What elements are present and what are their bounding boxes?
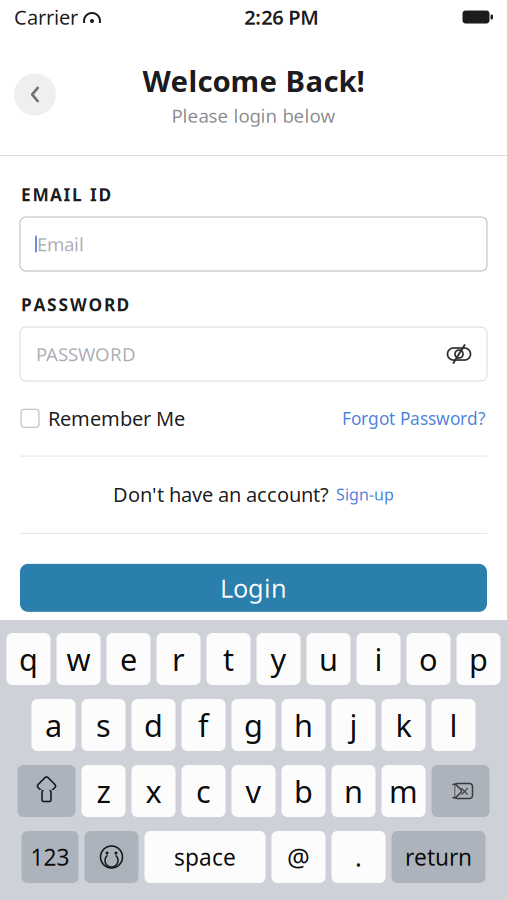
staticText: Carrier <box>14 4 78 30</box>
staticText: o <box>419 639 438 679</box>
staticText: Don't have an account? <box>113 481 329 507</box>
staticText: c <box>196 771 211 811</box>
button[interactable]: o <box>406 633 450 685</box>
staticText: b <box>294 771 313 811</box>
button[interactable]: space <box>144 831 265 883</box>
staticText: Email <box>37 232 84 256</box>
staticText: A <box>33 293 45 316</box>
button[interactable]: z <box>81 765 125 817</box>
button[interactable]: n <box>331 765 375 817</box>
staticText: Login <box>220 571 287 605</box>
staticText: k <box>395 705 411 745</box>
staticText: Forgot Password? <box>342 407 486 430</box>
button[interactable]: a <box>31 699 75 751</box>
staticText: s <box>96 705 111 745</box>
button[interactable]: s <box>81 699 125 751</box>
staticText: p <box>469 639 488 679</box>
staticText: h <box>294 705 313 745</box>
button[interactable]: t <box>206 633 250 685</box>
button[interactable]: v <box>231 765 275 817</box>
staticText: S <box>47 293 57 316</box>
staticText: O <box>88 293 102 316</box>
staticText: n <box>344 771 363 811</box>
button[interactable]: Forgot Password? <box>342 401 486 436</box>
button[interactable]: f <box>181 699 225 751</box>
staticText: . <box>355 840 362 874</box>
staticText: w <box>66 639 90 679</box>
button[interactable]: k <box>381 699 425 751</box>
staticText: y <box>270 639 286 679</box>
staticText: PASSWORD <box>36 342 136 366</box>
button[interactable]: j <box>331 699 375 751</box>
staticText: Sign-up <box>336 484 394 505</box>
staticText: D <box>116 293 129 316</box>
staticText: i <box>374 639 382 679</box>
staticText: A <box>50 183 62 206</box>
staticText: I <box>63 183 70 206</box>
button[interactable]: @ <box>271 831 325 883</box>
button[interactable]: p <box>456 633 500 685</box>
staticText: Welcome Back! <box>142 61 364 100</box>
staticText: 123 <box>30 842 69 872</box>
staticText: R <box>104 293 115 316</box>
staticText: t <box>223 639 234 679</box>
staticText: r <box>172 639 185 679</box>
staticText: j <box>349 705 357 745</box>
staticText: space <box>174 842 236 872</box>
staticText: D <box>98 183 111 206</box>
staticText: f <box>198 705 209 745</box>
button[interactable]: Shift <box>17 765 75 817</box>
button[interactable]: w <box>56 633 100 685</box>
button[interactable]: c <box>181 765 225 817</box>
button[interactable]: x <box>131 765 175 817</box>
button[interactable]: Delete <box>431 765 489 817</box>
button[interactable]: y <box>256 633 300 685</box>
button[interactable]: return <box>391 831 485 883</box>
staticText: P <box>21 293 32 316</box>
staticText: v <box>245 771 261 811</box>
staticText: Remember Me <box>48 405 185 432</box>
button[interactable]: q <box>6 633 50 685</box>
button[interactable]: 123 <box>21 831 78 883</box>
staticText: W <box>70 293 87 316</box>
button[interactable]: Login <box>20 564 487 612</box>
staticText: d <box>144 705 163 745</box>
button[interactable]: d <box>131 699 175 751</box>
button[interactable]: i <box>356 633 400 685</box>
button[interactable]: g <box>231 699 275 751</box>
staticText: E <box>21 183 31 206</box>
button[interactable]: h <box>281 699 325 751</box>
button[interactable]: b <box>281 765 325 817</box>
staticText: e <box>120 639 137 679</box>
staticText: S <box>58 293 68 316</box>
staticText: u <box>319 639 338 679</box>
staticText: q <box>19 639 38 679</box>
staticText: z <box>96 771 110 811</box>
button[interactable]: e <box>106 633 150 685</box>
staticText: L <box>72 183 82 206</box>
staticText: Please login below <box>171 103 335 128</box>
staticText: × <box>460 780 469 802</box>
button[interactable]: Back <box>14 73 56 115</box>
staticText: m <box>389 771 418 811</box>
button[interactable]: u <box>306 633 350 685</box>
button[interactable]: Show password <box>441 336 477 372</box>
button[interactable]: m <box>381 765 425 817</box>
button[interactable]: Remember Me <box>21 399 185 438</box>
staticText: g <box>244 705 263 745</box>
staticText: 2:26 PM <box>244 4 319 30</box>
staticText: return <box>405 842 472 872</box>
staticText: @ <box>287 840 310 874</box>
staticText: M <box>32 183 48 206</box>
staticText: l <box>449 705 457 745</box>
button[interactable]: r <box>156 633 200 685</box>
button[interactable]: . <box>331 831 385 883</box>
staticText: I <box>90 183 97 206</box>
staticText: x <box>145 771 161 811</box>
button[interactable]: Emoji <box>84 831 138 883</box>
staticText: a <box>45 705 62 745</box>
button[interactable]: l <box>431 699 475 751</box>
button[interactable]: Sign-up <box>336 479 394 510</box>
